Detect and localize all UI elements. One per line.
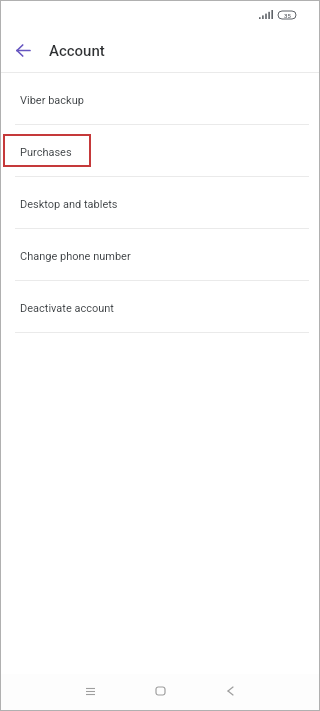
staticText: 35	[284, 12, 291, 19]
staticText: Desktop and tablets	[20, 198, 118, 211]
button[interactable]: Deactivate account	[0, 281, 320, 332]
button[interactable]: Viber backup	[0, 73, 320, 124]
staticText: Purchases	[20, 146, 72, 159]
staticText: Account	[49, 42, 105, 60]
button[interactable]: Recent apps	[55, 678, 125, 704]
button[interactable]: Back	[3, 30, 43, 70]
staticText: Viber backup	[20, 94, 84, 107]
button[interactable]: Change phone number	[0, 229, 320, 280]
staticText: Deactivate account	[20, 302, 114, 315]
button[interactable]: Purchases	[0, 125, 320, 176]
button[interactable]: Home	[125, 678, 195, 704]
staticText: Change phone number	[20, 250, 131, 263]
button[interactable]: Back	[195, 678, 265, 704]
button[interactable]: Desktop and tablets	[0, 177, 320, 228]
